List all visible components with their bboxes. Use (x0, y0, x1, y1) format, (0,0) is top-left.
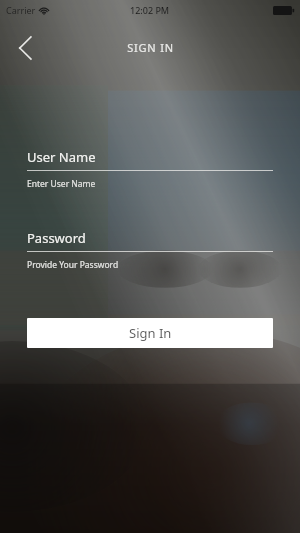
staticText: Enter User Name (27, 178, 96, 190)
staticText: User Name (27, 148, 96, 166)
button[interactable]: User Name (27, 148, 273, 190)
staticText: Provide Your Password (27, 259, 119, 271)
button[interactable]: Sign In (27, 318, 273, 348)
staticText: SIGN IN (127, 40, 174, 55)
staticText: 12:02 PM (130, 4, 170, 16)
button[interactable]: Password (27, 229, 273, 271)
staticText: Password (27, 229, 86, 247)
staticText: Sign In (129, 324, 172, 342)
button[interactable]: Back (8, 31, 42, 65)
staticText: Carrier (6, 4, 36, 16)
